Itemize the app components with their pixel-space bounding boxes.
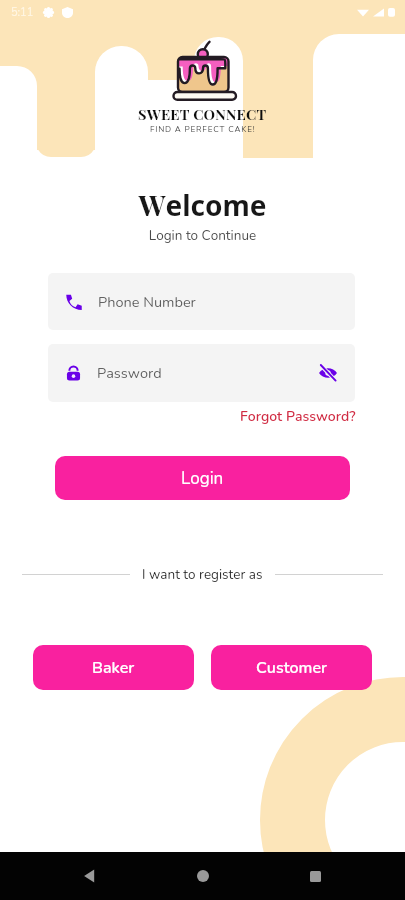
staticText: SWEET CONNECT (138, 104, 267, 123)
button[interactable]: Recent apps (293, 854, 337, 898)
button[interactable]: Phone Number (48, 273, 355, 330)
staticText: Welcome (24, 186, 381, 225)
button[interactable]: Back (68, 854, 112, 898)
staticText: Baker (92, 657, 135, 679)
button[interactable]: Login (55, 456, 350, 500)
staticText: FIND A PERFECT CAKE! (150, 124, 256, 135)
button[interactable]: Password (48, 344, 355, 402)
button[interactable]: Customer (211, 645, 372, 690)
staticText: I want to register as (142, 565, 263, 583)
staticText: 5:11 (11, 5, 34, 20)
staticText: Forgot Password? (240, 407, 356, 426)
button[interactable]: Baker (33, 645, 194, 690)
staticText: Customer (256, 657, 327, 679)
staticText: Login (181, 467, 224, 490)
staticText: Phone Number (98, 292, 196, 312)
button[interactable]: Show password (315, 360, 341, 386)
button[interactable]: Forgot Password? (240, 407, 356, 426)
staticText: Login to Continue (24, 226, 381, 244)
button[interactable]: Home (181, 854, 225, 898)
staticText: Password (97, 363, 162, 383)
